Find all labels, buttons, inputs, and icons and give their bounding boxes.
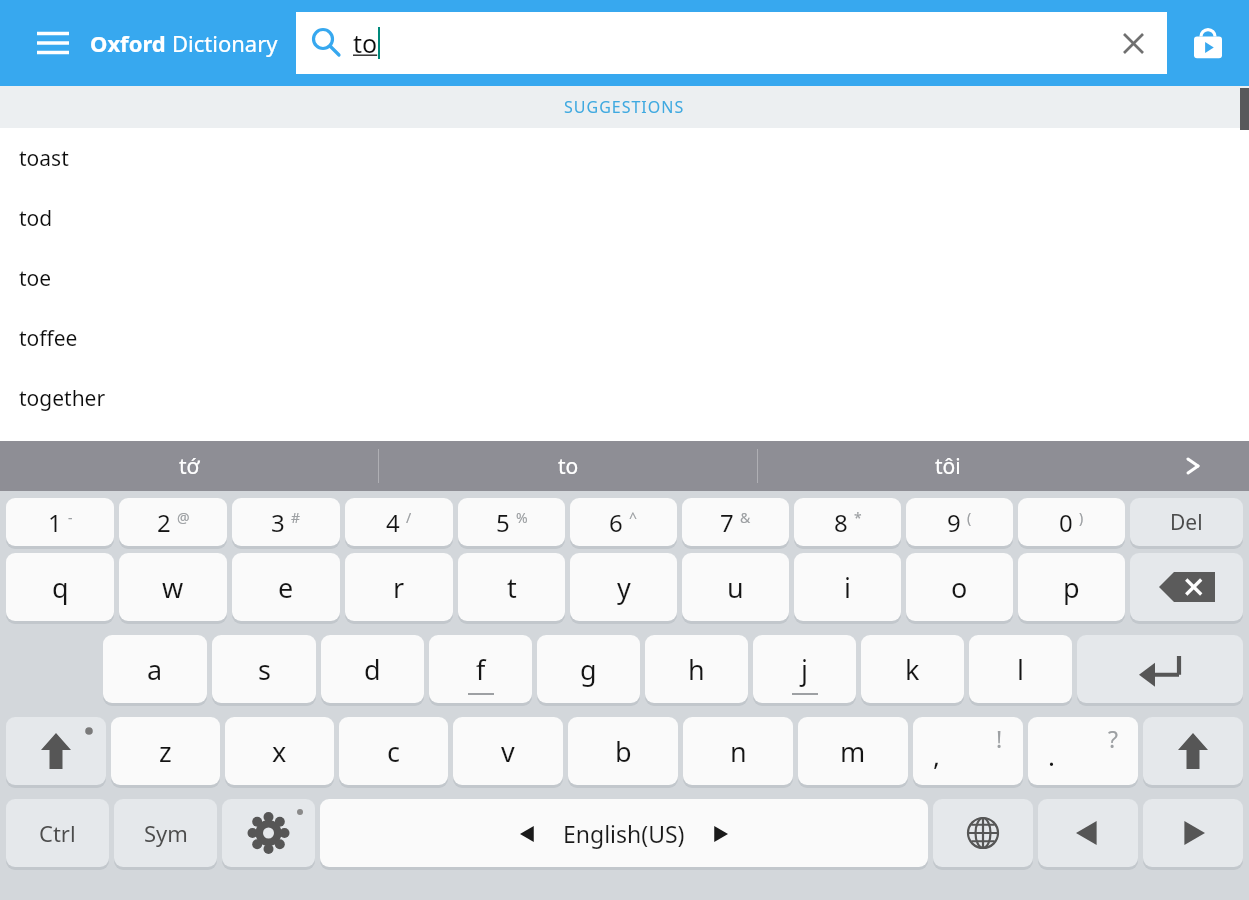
staticText: l [1017, 651, 1024, 688]
button[interactable]: x [225, 717, 334, 785]
button[interactable]: m [798, 717, 908, 785]
button[interactable]: Move right [1143, 799, 1243, 867]
staticText: ( [967, 508, 972, 527]
button[interactable]: 8 [794, 498, 901, 546]
button[interactable]: n [683, 717, 793, 785]
staticText: t [507, 569, 517, 606]
staticText: 5 [496, 506, 510, 539]
staticText: v [501, 733, 515, 770]
staticText: f [476, 651, 486, 688]
button[interactable]: e [232, 553, 340, 621]
button[interactable]: tớ [0, 441, 379, 491]
button[interactable]: Enter [1077, 635, 1243, 703]
button[interactable]: together [0, 368, 1249, 428]
staticText: m [840, 733, 866, 770]
button[interactable]: 2 [119, 498, 227, 546]
staticText: 2 [157, 506, 171, 539]
button[interactable]: 5 [458, 498, 565, 546]
button[interactable]: g [537, 635, 640, 703]
button[interactable]: o [906, 553, 1013, 621]
button[interactable]: 1 [6, 498, 114, 546]
button[interactable]: 6 [570, 498, 677, 546]
button[interactable]: Shift [1143, 717, 1243, 785]
staticText: toffee [19, 324, 78, 353]
button[interactable]: h [645, 635, 748, 703]
button[interactable]: More suggestions [1137, 441, 1249, 491]
staticText: d [364, 651, 381, 688]
staticText: tớ [179, 452, 200, 481]
staticText: s [258, 651, 271, 688]
staticText: . [1048, 738, 1055, 773]
button[interactable]: Change language [933, 799, 1033, 867]
button[interactable]: 9 [906, 498, 1013, 546]
staticText: / [406, 508, 412, 527]
staticText: i [844, 569, 851, 606]
button[interactable]: i [794, 553, 901, 621]
button[interactable]: c [339, 717, 448, 785]
button[interactable]: 4 [345, 498, 453, 546]
staticText: together [19, 384, 106, 413]
button[interactable]: Settings [222, 799, 315, 867]
staticText: ) [1079, 508, 1084, 527]
staticText: p [1063, 569, 1080, 606]
button[interactable]: p [1018, 553, 1125, 621]
button[interactable]: to [296, 12, 1167, 74]
staticText: o [951, 569, 968, 606]
button[interactable]: tod [0, 188, 1249, 248]
button[interactable]: toe [0, 248, 1249, 308]
button[interactable]: toffee [0, 308, 1249, 368]
button[interactable]: t [458, 553, 565, 621]
button[interactable]: Del [1130, 498, 1243, 546]
staticText: SUGGESTIONS [564, 96, 685, 118]
button[interactable]: . [1028, 717, 1138, 785]
button[interactable]: u [682, 553, 789, 621]
staticText: - [68, 508, 73, 527]
staticText: a [147, 651, 163, 688]
staticText: Dictionary [172, 28, 278, 58]
button[interactable]: w [119, 553, 227, 621]
button[interactable]: k [861, 635, 964, 703]
staticText: w [162, 569, 184, 606]
button[interactable]: y [570, 553, 677, 621]
button[interactable]: s [212, 635, 316, 703]
staticText: h [688, 651, 705, 688]
button[interactable]: q [6, 553, 114, 621]
button[interactable]: Ctrl [6, 799, 109, 867]
staticText: k [905, 651, 920, 688]
staticText: u [727, 569, 744, 606]
staticText: Oxford [90, 28, 172, 58]
button[interactable]: r [345, 553, 453, 621]
button[interactable]: Menu [24, 14, 82, 72]
button[interactable]: b [568, 717, 678, 785]
button[interactable]: Move left [1038, 799, 1138, 867]
button[interactable]: , [913, 717, 1023, 785]
button[interactable]: tôi [758, 441, 1137, 491]
button[interactable]: Play Store [1179, 14, 1237, 72]
button[interactable]: d [321, 635, 424, 703]
button[interactable]: English(US) [320, 799, 928, 867]
button[interactable]: Shift [6, 717, 106, 785]
button[interactable]: 3 [232, 498, 340, 546]
button[interactable]: toast [0, 128, 1249, 188]
button[interactable]: Backspace [1130, 553, 1243, 621]
staticText: x [272, 733, 287, 770]
button[interactable]: a [103, 635, 207, 703]
staticText: c [387, 733, 400, 770]
staticText: Sym [144, 818, 188, 848]
button[interactable]: 7 [682, 498, 789, 546]
button[interactable]: z [111, 717, 220, 785]
staticText: % [516, 508, 528, 527]
button[interactable]: j [753, 635, 856, 703]
button[interactable]: Sym [114, 799, 217, 867]
button[interactable]: v [453, 717, 563, 785]
staticText: , [933, 738, 940, 773]
staticText: q [52, 569, 69, 606]
staticText: j [801, 651, 808, 688]
staticText: 8 [834, 506, 848, 539]
button[interactable]: to [379, 441, 758, 491]
staticText: Del [1170, 508, 1203, 537]
button[interactable]: l [969, 635, 1072, 703]
button[interactable]: Clear search [1111, 21, 1155, 65]
button[interactable]: f [429, 635, 532, 703]
button[interactable]: 0 [1018, 498, 1125, 546]
